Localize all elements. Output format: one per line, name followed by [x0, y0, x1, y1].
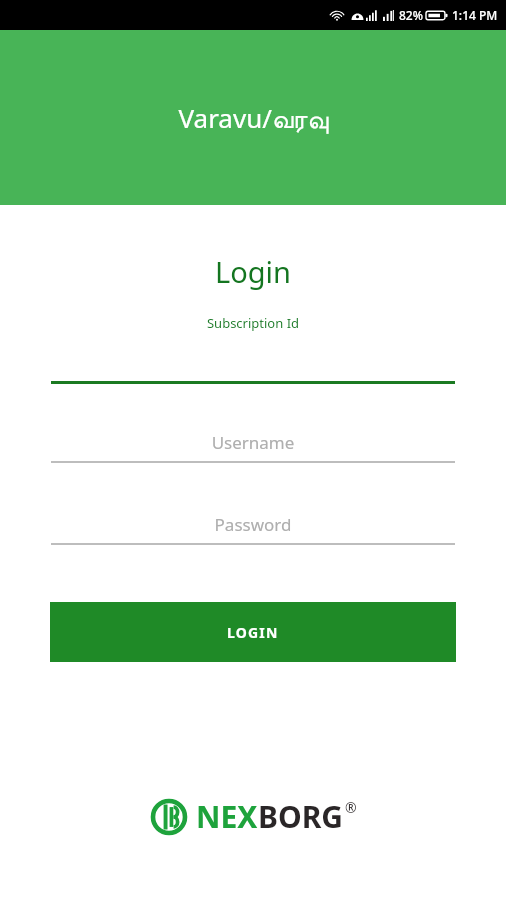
button[interactable]: LOGIN	[50, 602, 456, 662]
staticText: BORG	[258, 796, 344, 837]
staticText: NEX	[196, 796, 258, 837]
button[interactable]: Username	[51, 431, 455, 463]
staticText: Username	[51, 431, 455, 454]
button[interactable]: Password	[51, 513, 455, 545]
staticText: ®	[345, 798, 357, 817]
staticText: Subscription Id	[0, 314, 506, 332]
staticText: LOGIN	[227, 623, 279, 642]
staticText: 1:14 PM	[452, 7, 498, 23]
staticText: Login	[0, 252, 506, 291]
staticText: Varavu/வரவு	[178, 100, 329, 135]
button[interactable]	[51, 362, 455, 384]
staticText: Password	[51, 513, 455, 536]
staticText: 82%	[399, 7, 423, 23]
